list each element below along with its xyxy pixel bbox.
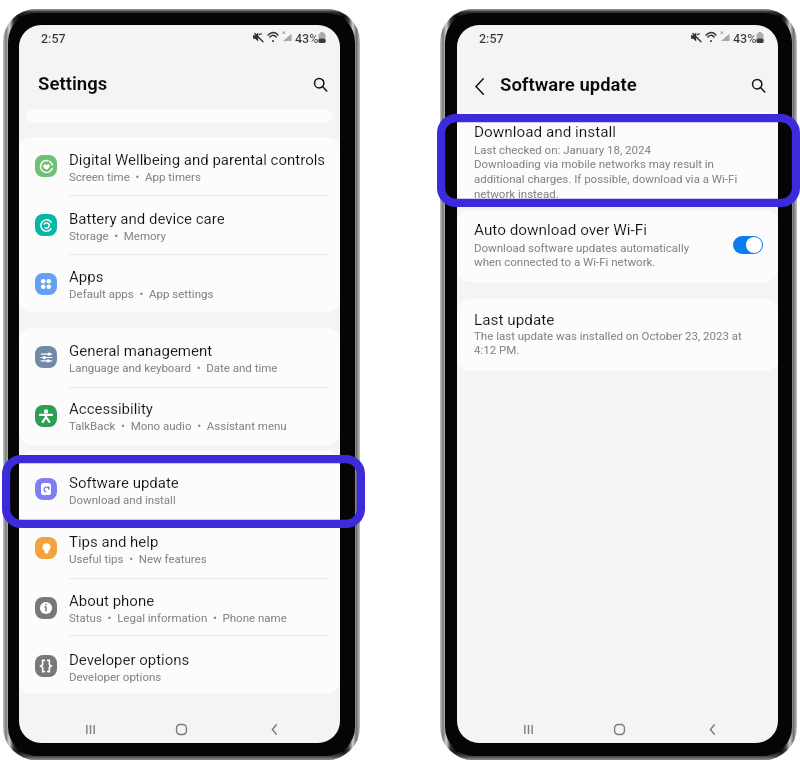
button[interactable]: Developer options xyxy=(19,636,340,694)
button[interactable]: Accessibility xyxy=(19,388,340,445)
staticText: Download software updates automatically … xyxy=(474,241,704,269)
staticText: Battery and device care xyxy=(69,210,225,228)
staticText: 2:57 xyxy=(41,31,66,46)
button[interactable]: Tips and help xyxy=(19,524,340,579)
button[interactable]: Download and install xyxy=(457,112,778,202)
staticText: Storage • Memory xyxy=(69,229,167,242)
staticText: Default apps • App settings xyxy=(69,287,214,300)
staticText: 43% xyxy=(733,31,757,46)
button[interactable]: Search xyxy=(304,68,336,100)
staticText: Apps xyxy=(69,268,104,286)
staticText: Screen time • App timers xyxy=(69,170,201,183)
button[interactable]: Auto download over Wi-Fi xyxy=(457,210,778,282)
staticText: The last update was installed on October… xyxy=(474,329,756,357)
staticText: Software update xyxy=(500,74,637,96)
staticText: Settings xyxy=(38,73,108,95)
staticText: Software update xyxy=(69,474,179,492)
button[interactable]: Apps xyxy=(19,255,340,312)
staticText: Accessibility xyxy=(69,400,153,418)
staticText: 43% xyxy=(295,31,319,46)
staticText: Last update xyxy=(474,311,555,329)
staticText: TalkBack • Mono audio • Assistant menu xyxy=(69,419,287,432)
button[interactable]: Recents xyxy=(515,716,541,742)
staticText: 2:57 xyxy=(479,31,504,46)
button[interactable]: Recents xyxy=(77,716,103,742)
button[interactable]: Home xyxy=(606,716,632,742)
button[interactable]: Back xyxy=(261,716,287,742)
button[interactable]: About phone xyxy=(19,579,340,636)
staticText: Developer options xyxy=(69,651,190,669)
staticText: Language and keyboard • Date and time xyxy=(69,361,278,374)
staticText: Auto download over Wi-Fi xyxy=(474,221,647,239)
button[interactable]: General management xyxy=(19,328,340,388)
staticText: Last checked on: January 18, 2024 Downlo… xyxy=(474,143,756,201)
button[interactable]: Battery and device care xyxy=(19,196,340,255)
staticText: General management xyxy=(69,342,213,360)
staticText: Download and install xyxy=(69,493,176,506)
button[interactable]: Last update xyxy=(457,299,778,371)
button[interactable]: Auto download over Wi-Fi toggle xyxy=(733,236,763,254)
button[interactable]: Back xyxy=(463,70,495,102)
staticText: Download and install xyxy=(474,123,616,141)
button[interactable]: Digital Wellbeing and parental controls xyxy=(19,137,340,196)
button[interactable]: Home xyxy=(168,716,194,742)
staticText: Useful tips • New features xyxy=(69,552,207,565)
staticText: Tips and help xyxy=(69,533,159,551)
staticText: Developer options xyxy=(69,670,162,683)
button[interactable]: Search xyxy=(742,69,774,101)
staticText: Digital Wellbeing and parental controls xyxy=(69,151,326,169)
button[interactable]: Software update xyxy=(19,451,340,524)
button[interactable]: Back xyxy=(699,716,725,742)
staticText: Status • Legal information • Phone name xyxy=(69,611,287,624)
staticText: About phone xyxy=(69,592,155,610)
